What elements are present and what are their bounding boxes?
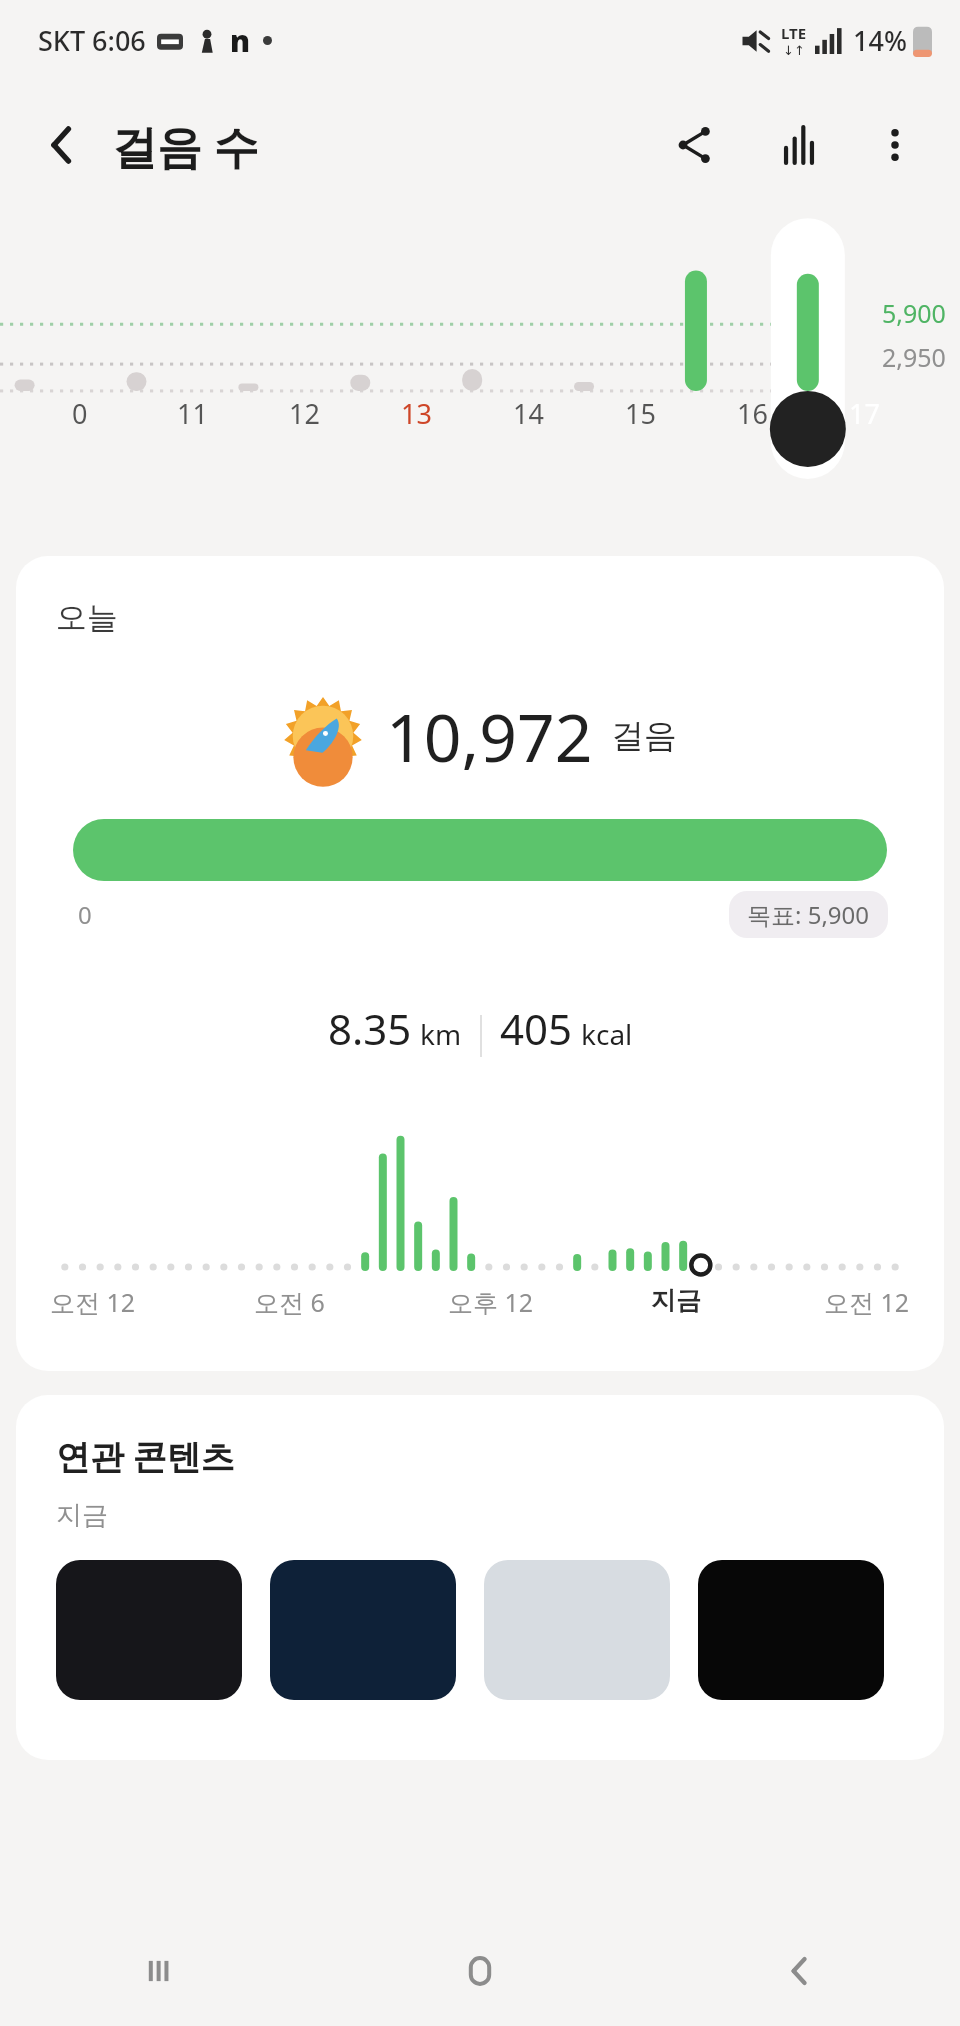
staticText: 12 bbox=[289, 395, 320, 432]
staticText: 오전 6 bbox=[254, 1285, 325, 1319]
staticText: km bbox=[420, 1015, 462, 1053]
staticText: 0 bbox=[72, 395, 88, 432]
staticText: 오늘 bbox=[56, 598, 118, 637]
staticText: 14% bbox=[853, 22, 907, 59]
staticText: 목표: 5,900 bbox=[747, 898, 870, 931]
staticText: 8.35 bbox=[328, 1000, 412, 1057]
button[interactable]: 연관 콘텐츠 bbox=[16, 1395, 944, 1760]
staticText: 오후 12 bbox=[448, 1285, 534, 1319]
staticText: 걸음 bbox=[611, 715, 677, 757]
staticText: 지금 bbox=[651, 1285, 701, 1316]
staticText: 14 bbox=[513, 395, 544, 432]
button[interactable] bbox=[270, 1560, 456, 1700]
button[interactable]: Back bbox=[26, 109, 98, 181]
button[interactable]: 오늘 bbox=[16, 556, 944, 1371]
staticText: 연관 콘텐츠 bbox=[56, 1433, 235, 1479]
staticText: 오전 12 bbox=[824, 1285, 910, 1319]
staticText: 5,900 bbox=[882, 296, 946, 330]
button[interactable]: Chart bbox=[760, 106, 838, 184]
button[interactable]: Home bbox=[320, 1916, 640, 2026]
staticText: 11 bbox=[177, 395, 208, 432]
button[interactable] bbox=[698, 1560, 884, 1700]
staticText: n bbox=[230, 20, 251, 61]
staticText: 10,972 bbox=[386, 691, 593, 781]
button[interactable] bbox=[56, 1560, 242, 1700]
button[interactable]: Recents bbox=[0, 1916, 320, 2026]
staticText: 지금 bbox=[56, 1499, 108, 1532]
staticText: 2,950 bbox=[882, 340, 946, 374]
staticText: 15 bbox=[625, 395, 656, 432]
staticText: kcal bbox=[581, 1015, 633, 1053]
staticText: 0 bbox=[78, 898, 92, 931]
staticText: 걸음 수 bbox=[112, 115, 259, 176]
button[interactable]: More options bbox=[856, 106, 934, 184]
staticText: 17 bbox=[849, 395, 880, 432]
staticText: 405 bbox=[500, 1000, 573, 1057]
staticText: 13 bbox=[401, 395, 432, 432]
button[interactable]: Back bbox=[640, 1916, 960, 2026]
staticText: ↓↑ bbox=[783, 43, 805, 58]
staticText: SKT 6:06 bbox=[38, 22, 146, 59]
staticText: 오전 12 bbox=[50, 1285, 136, 1319]
button[interactable] bbox=[484, 1560, 670, 1700]
staticText: 16 bbox=[737, 395, 768, 432]
staticText: LTE bbox=[781, 23, 807, 43]
button[interactable]: Share bbox=[656, 106, 734, 184]
